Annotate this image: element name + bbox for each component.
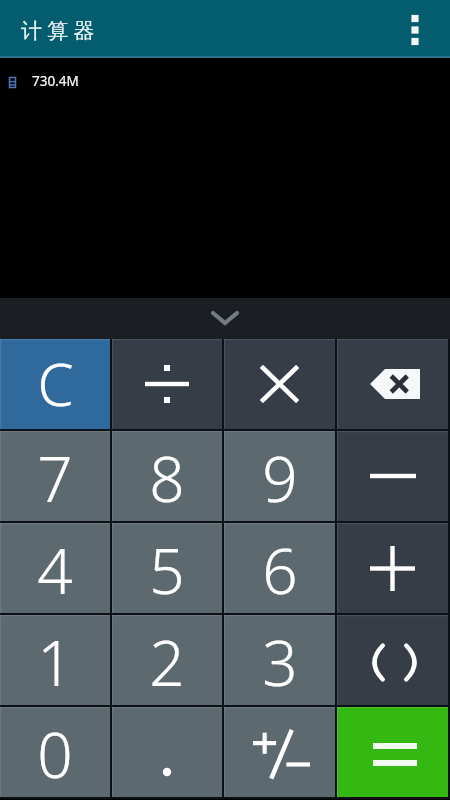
button[interactable]: Decimal point xyxy=(112,707,222,797)
button[interactable]: Backspace xyxy=(337,339,448,429)
staticText: 8 xyxy=(149,436,185,520)
staticText: 计算器 xyxy=(21,18,100,44)
staticText: 4 xyxy=(37,528,73,612)
staticText: 0 xyxy=(37,712,73,796)
staticText: 2 xyxy=(149,620,185,704)
staticText: 6 xyxy=(262,528,298,612)
button[interactable]: Clear xyxy=(0,339,110,429)
staticText: 9 xyxy=(262,436,298,520)
button[interactable]: Plus xyxy=(337,523,448,613)
button[interactable]: 6 xyxy=(224,523,335,613)
button[interactable]: More options xyxy=(389,2,441,54)
staticText: 3 xyxy=(262,620,298,704)
button[interactable]: Divide xyxy=(112,339,222,429)
button[interactable]: Plus minus xyxy=(224,707,335,797)
button[interactable]: Minus xyxy=(337,431,448,521)
button[interactable]: 2 xyxy=(112,615,222,705)
button[interactable]: 7 xyxy=(0,431,110,521)
button[interactable]: 8 xyxy=(112,431,222,521)
staticText: 5 xyxy=(149,528,185,612)
button[interactable]: 4 xyxy=(0,523,110,613)
button[interactable]: Expand history xyxy=(0,298,450,339)
button[interactable]: 5 xyxy=(112,523,222,613)
staticText: C xyxy=(37,344,74,423)
button[interactable]: 9 xyxy=(224,431,335,521)
button[interactable]: 0 xyxy=(0,707,110,797)
staticText: 7 xyxy=(37,436,73,520)
button[interactable]: Multiply xyxy=(224,339,335,429)
button[interactable]: Equals xyxy=(337,707,448,797)
button[interactable]: Parentheses xyxy=(337,615,448,705)
staticText: 1 xyxy=(37,620,73,704)
staticText: 730.4M xyxy=(32,72,79,90)
button[interactable]: 3 xyxy=(224,615,335,705)
button[interactable]: 1 xyxy=(0,615,110,705)
